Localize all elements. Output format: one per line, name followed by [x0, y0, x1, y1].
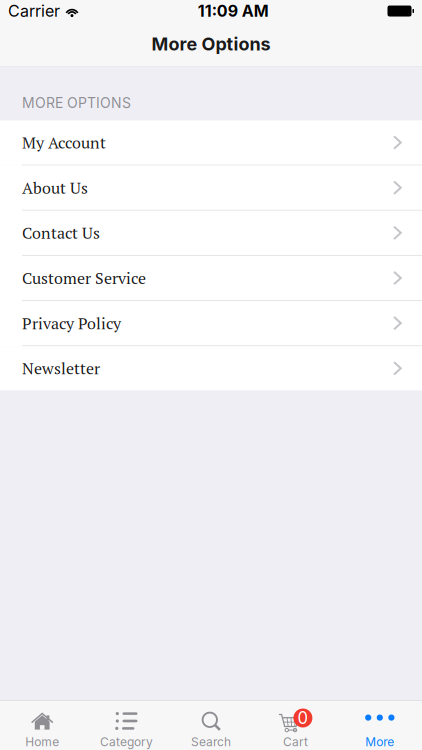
staticText: More Options [151, 33, 270, 55]
button[interactable]: Privacy Policy [0, 301, 422, 346]
button[interactable]: Search [169, 701, 253, 750]
staticText: Contact Us [22, 222, 100, 243]
button[interactable]: My Account [0, 120, 422, 166]
staticText: 0 [297, 708, 308, 728]
button[interactable]: Customer Service [0, 256, 422, 301]
button[interactable]: More [338, 701, 422, 750]
staticText: Search [191, 735, 231, 749]
staticText: About Us [22, 177, 88, 198]
staticText: Newsletter [22, 358, 100, 379]
staticText: More [365, 735, 394, 749]
staticText: Carrier [8, 1, 60, 21]
staticText: 11:09 AM [198, 1, 269, 21]
button[interactable]: Contact Us [0, 211, 422, 256]
staticText: My Account [22, 132, 106, 153]
staticText: Category [100, 735, 153, 749]
staticText: MORE OPTIONS [22, 94, 131, 111]
button[interactable]: Category [84, 701, 169, 750]
button[interactable]: 0 [253, 701, 338, 750]
button[interactable]: Newsletter [0, 346, 422, 390]
staticText: Home [25, 735, 59, 749]
staticText: Privacy Policy [22, 313, 121, 334]
button[interactable]: Home [0, 701, 84, 750]
staticText: Cart [283, 735, 308, 749]
staticText: Customer Service [22, 267, 146, 289]
button[interactable]: About Us [0, 166, 422, 211]
